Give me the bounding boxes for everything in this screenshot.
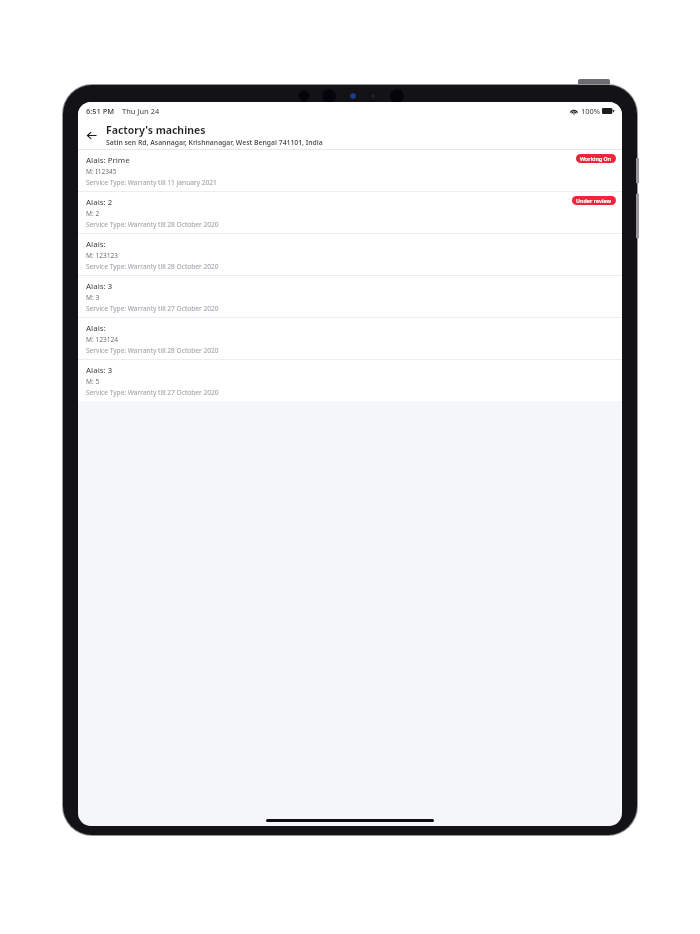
staticText: Under review: [576, 197, 612, 204]
staticText: M: I12345: [86, 167, 117, 176]
staticText: 6:51 PM: [86, 106, 115, 116]
button[interactable]: Alais: Prime: [78, 150, 622, 191]
button[interactable]: Under review: [572, 196, 616, 205]
staticText: M: 123124: [86, 335, 119, 344]
staticText: Service Type: Warranty till 28 October 2…: [86, 262, 219, 271]
staticText: Service Type: Warranty till 27 October 2…: [86, 388, 219, 397]
staticText: Service Type: Warranty till 28 October 2…: [86, 220, 219, 229]
staticText: Working On: [580, 155, 612, 162]
button[interactable]: Back: [78, 122, 104, 148]
button[interactable]: Working On: [576, 154, 616, 163]
button[interactable]: Alais: 2: [78, 192, 622, 233]
button[interactable]: Alais:: [78, 234, 622, 275]
staticText: Factory's machines: [106, 123, 206, 137]
staticText: M: 2: [86, 209, 100, 218]
staticText: Alais: Prime: [86, 155, 130, 166]
button[interactable]: Alais: 3: [78, 360, 622, 401]
staticText: Service Type: Warranty till 11 January 2…: [86, 178, 217, 187]
button[interactable]: Alais:: [78, 318, 622, 359]
staticText: M: 123123: [86, 251, 119, 260]
staticText: M: 3: [86, 293, 100, 302]
staticText: Service Type: Warranty till 28 October 2…: [86, 346, 219, 355]
staticText: Alais: 3: [86, 365, 113, 376]
staticText: Thu Jun 24: [122, 106, 160, 116]
button[interactable]: Alais: 3: [78, 276, 622, 317]
staticText: Alais:: [86, 239, 106, 250]
staticText: Alais:: [86, 323, 106, 334]
staticText: M: 5: [86, 377, 100, 386]
staticText: Alais: 2: [86, 197, 113, 208]
staticText: Service Type: Warranty till 27 October 2…: [86, 304, 219, 313]
staticText: Alais: 3: [86, 281, 113, 292]
staticText: Satin sen Rd, Asannagar, Krishnanagar, W…: [106, 138, 323, 147]
staticText: 100%: [581, 106, 600, 116]
